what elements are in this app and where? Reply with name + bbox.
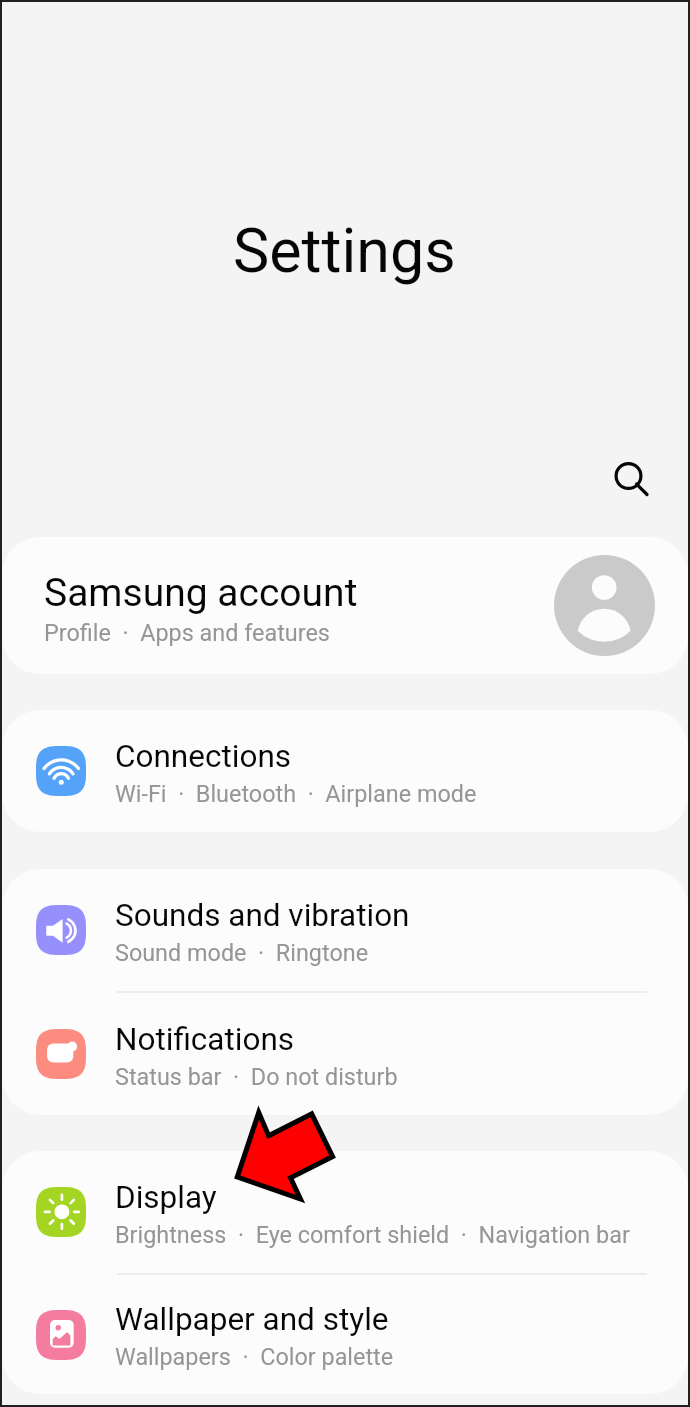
- staticText: Brightness · Eye comfort shield · Naviga…: [115, 1221, 630, 1248]
- staticText: Status bar · Do not disturb: [115, 1063, 398, 1090]
- button[interactable]: Connections: [2, 710, 688, 832]
- staticText: Connections: [115, 738, 292, 775]
- button[interactable]: Display: [2, 1151, 688, 1273]
- staticText: Notifications: [115, 1021, 295, 1058]
- button[interactable]: Samsung account: [2, 537, 688, 674]
- staticText: Sound mode · Ringtone: [115, 939, 369, 966]
- staticText: Display: [115, 1179, 217, 1216]
- button[interactable]: Search: [596, 444, 668, 516]
- staticText: Wi-Fi · Bluetooth · Airplane mode: [115, 780, 477, 807]
- button[interactable]: Notifications: [2, 993, 688, 1115]
- staticText: Sounds and vibration: [115, 897, 410, 934]
- staticText: Settings: [233, 215, 456, 286]
- staticText: Wallpaper and style: [115, 1301, 389, 1338]
- button[interactable]: Sounds and vibration: [2, 869, 688, 991]
- button[interactable]: Wallpaper and style: [2, 1275, 688, 1394]
- staticText: Wallpapers · Color palette: [115, 1343, 394, 1370]
- staticText: Profile · Apps and features: [44, 619, 330, 646]
- staticText: Samsung account: [44, 570, 358, 616]
